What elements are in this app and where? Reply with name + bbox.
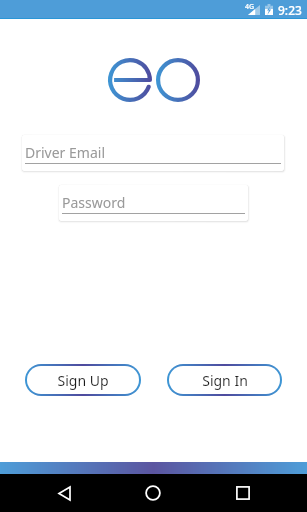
staticText: 4G [245,2,255,12]
staticText: Sign Up [57,371,109,390]
button[interactable]: Sign In [169,366,280,394]
staticText: Driver Email [25,143,105,162]
button[interactable]: Password [59,185,248,221]
button[interactable]: Sign Up [27,366,139,394]
staticText: 9:23 [278,2,302,18]
button[interactable]: Home [135,475,171,511]
button[interactable]: Recent apps [225,475,261,511]
staticText: Sign In [202,371,248,390]
button[interactable]: Driver Email [22,135,284,171]
button[interactable]: Back [46,475,82,511]
staticText: Password [62,193,126,212]
